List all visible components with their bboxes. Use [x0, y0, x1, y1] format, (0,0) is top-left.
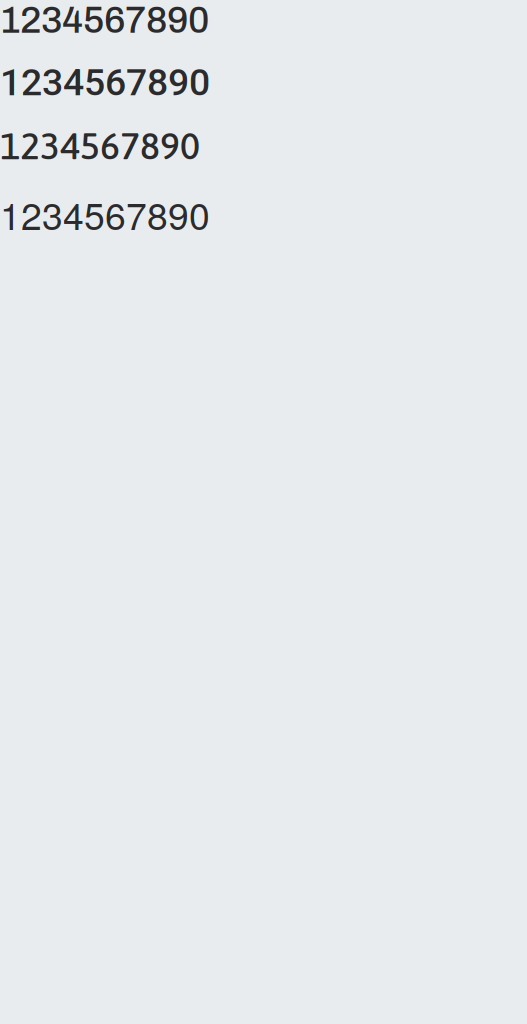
staticText: 1234567890: [0, 187, 210, 241]
staticText: 1234567890: [0, 61, 210, 104]
staticText: 1234567890: [0, 0, 209, 41]
staticText: 1234567890: [0, 124, 200, 167]
